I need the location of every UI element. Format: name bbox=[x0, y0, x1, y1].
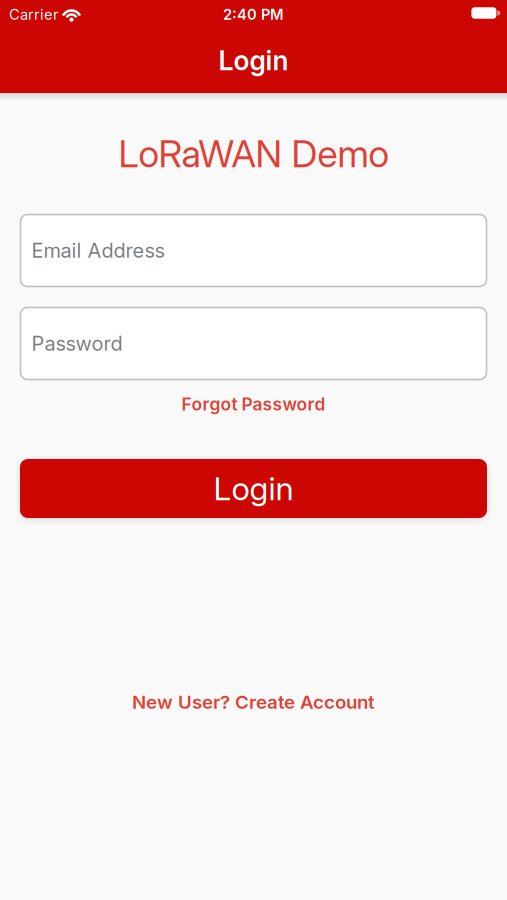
button[interactable]: Login bbox=[20, 459, 487, 518]
button[interactable]: Password bbox=[20, 307, 486, 379]
staticText: Forgot Password bbox=[181, 394, 325, 414]
staticText: New User? Create Account bbox=[132, 691, 375, 713]
staticText: Login bbox=[213, 470, 293, 507]
button[interactable]: Email Address bbox=[20, 214, 486, 286]
staticText: Carrier bbox=[9, 6, 59, 23]
staticText: Password bbox=[31, 332, 122, 355]
button[interactable]: Forgot Password bbox=[181, 394, 325, 414]
staticText: Login bbox=[218, 45, 288, 76]
staticText: 2:40 PM bbox=[223, 6, 284, 23]
button[interactable]: New User? Create Account bbox=[132, 691, 375, 713]
staticText: Email Address bbox=[31, 239, 164, 262]
staticText: LoRaWAN Demo bbox=[118, 131, 388, 176]
